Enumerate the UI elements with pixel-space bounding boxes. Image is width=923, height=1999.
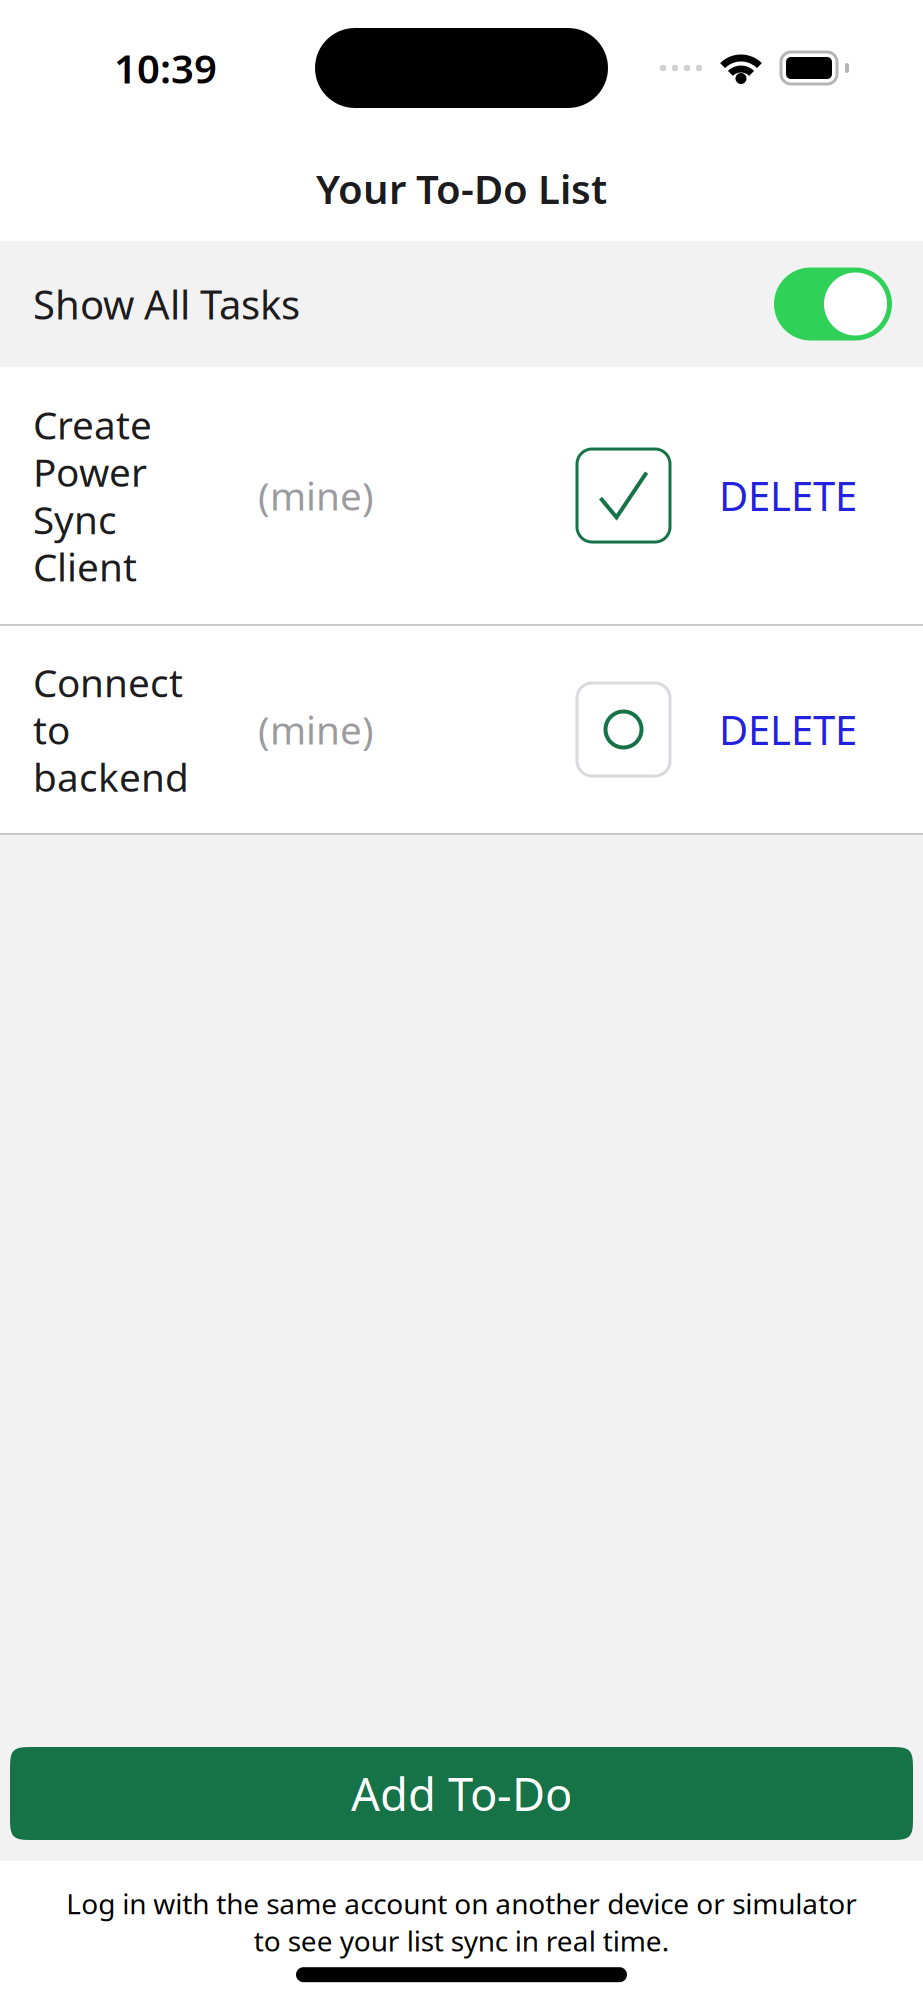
staticText: Show All Tasks [33,277,300,330]
button[interactable]: DELETE [719,703,857,756]
staticText: (mine) [258,470,374,521]
staticText: 10:39 [114,41,217,94]
staticText: DELETE [719,469,857,522]
staticText: (mine) [258,704,374,755]
button[interactable]: DELETE [719,469,857,522]
staticText: Your To-Do List [316,162,607,215]
staticText: Log in with the same account on another … [66,1885,857,1959]
button[interactable]: Add To-Do [10,1747,913,1840]
button[interactable]: Mark complete [577,683,670,776]
staticText: Add To-Do [351,1763,572,1824]
staticText: DELETE [719,703,857,756]
button[interactable]: Mark incomplete [577,449,670,542]
button[interactable]: Show All Tasks [774,267,892,340]
staticText: Connect to backend [33,656,189,802]
staticText: Create Power Sync Client [33,399,152,592]
